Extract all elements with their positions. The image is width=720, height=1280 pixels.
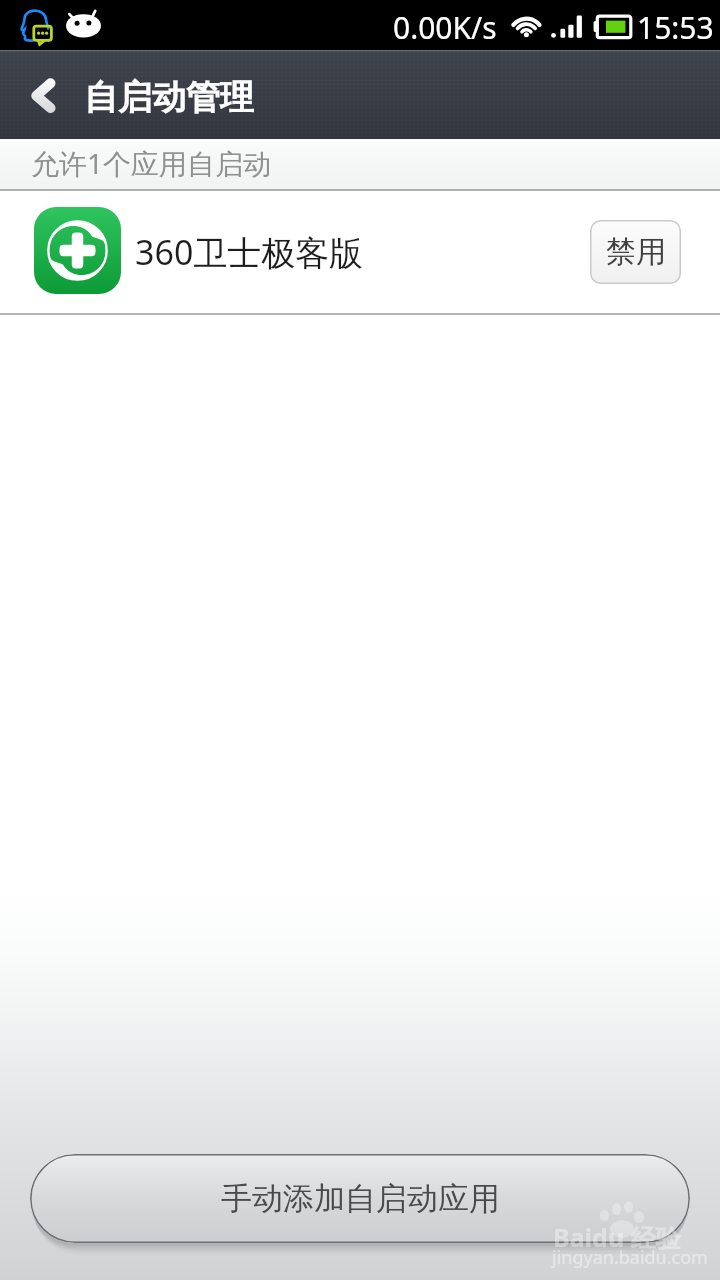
staticText: Baidu 经验 [553,1220,681,1254]
button[interactable]: 禁用 [590,220,681,284]
button[interactable]: 360卫士极客版 [0,191,720,313]
staticText: 手动添加自启动应用 [221,1179,500,1218]
staticText: 15:53 [637,7,714,48]
staticText: 允许1个应用自启动 [31,144,272,182]
staticText: 自启动管理 [84,76,254,119]
staticText: 禁用 [606,233,666,271]
button[interactable]: 手动添加自启动应用 [30,1154,690,1243]
staticText: 360卫士极客版 [135,229,364,275]
staticText: jingyan.baidu.com [552,1245,708,1270]
button[interactable]: Back [0,50,84,139]
staticText: 0.00K/s [393,7,497,48]
